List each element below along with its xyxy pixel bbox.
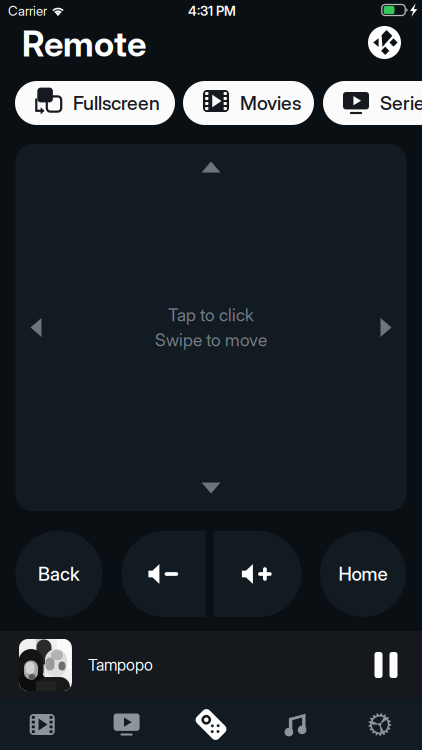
staticText: Swipe to move	[155, 329, 267, 350]
staticText: Tap to click	[168, 304, 254, 325]
staticText: Carrier	[8, 3, 47, 19]
staticText: 4:31 PM	[188, 3, 236, 19]
button[interactable]: Movies	[183, 81, 314, 125]
button[interactable]: Music	[253, 699, 337, 750]
button[interactable]: Home	[320, 531, 406, 617]
button[interactable]: Trackpad	[15, 144, 406, 511]
button[interactable]: TV Shows	[85, 699, 169, 750]
staticText: Series	[380, 91, 422, 115]
button[interactable]: Fullscreen	[15, 81, 175, 125]
staticText: Home	[338, 563, 387, 585]
button[interactable]: Volume down	[121, 531, 205, 617]
button[interactable]: Volume up	[213, 531, 301, 617]
button[interactable]: Tampopo	[19, 631, 349, 699]
button[interactable]: Back	[15, 530, 102, 617]
staticText: Tampopo	[88, 655, 153, 675]
button[interactable]: Kodi	[368, 26, 401, 59]
button[interactable]: Settings	[338, 699, 422, 750]
button[interactable]: Movies	[0, 699, 84, 750]
staticText: Remote	[22, 23, 146, 65]
staticText: Movies	[240, 91, 301, 115]
button[interactable]: Pause	[359, 635, 413, 695]
staticText: Fullscreen	[73, 91, 160, 115]
button[interactable]: Remote	[169, 699, 253, 750]
button[interactable]: Series	[323, 81, 422, 125]
staticText: Back	[38, 563, 80, 585]
